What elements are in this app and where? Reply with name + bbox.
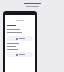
button[interactable]: Account [7,52,33,57]
button[interactable]: Account [7,36,33,41]
